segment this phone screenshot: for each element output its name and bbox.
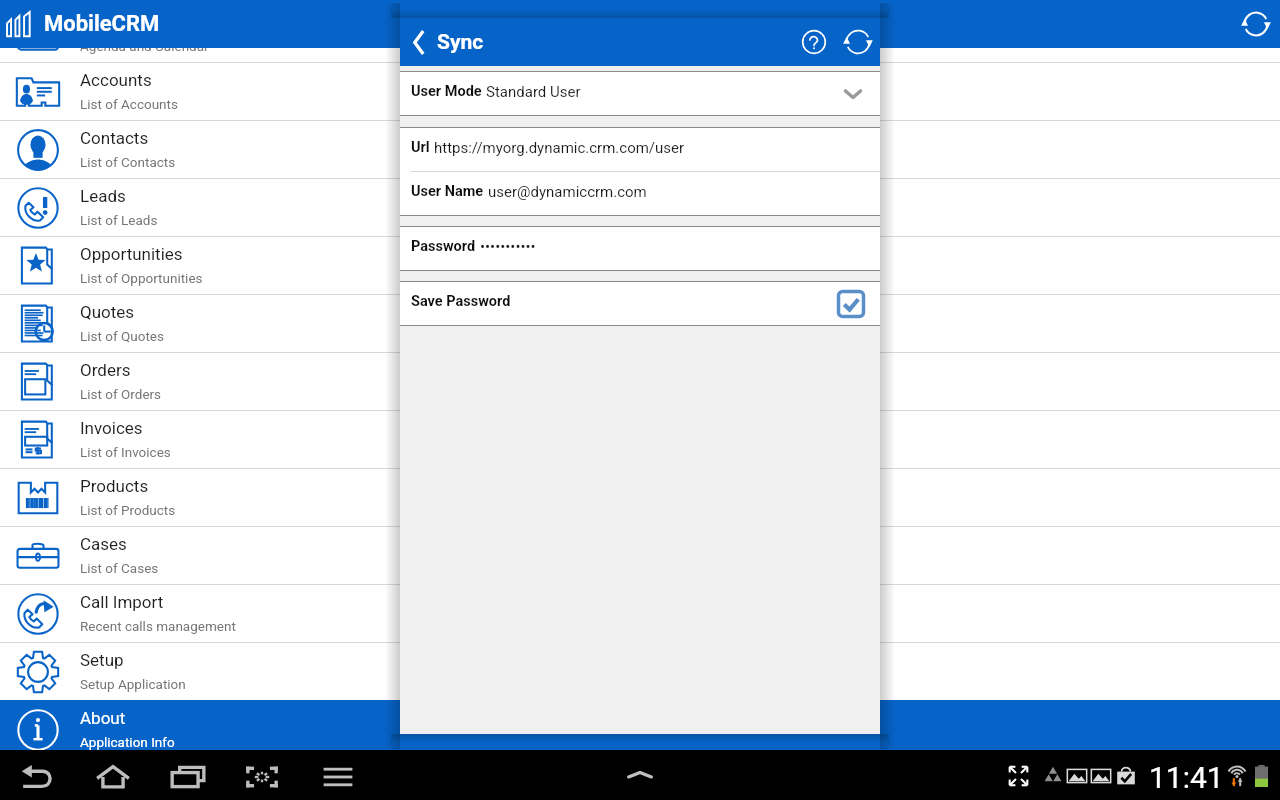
button[interactable]: Invoices [0,410,1280,468]
staticText: Sync [437,30,484,55]
button[interactable]: User Mode [400,72,880,115]
staticText: About [80,708,126,728]
staticText: Cases [80,534,127,554]
staticText: Application Info [80,734,175,750]
staticText: user@dynamiccrm.com [488,183,647,201]
staticText: List of Orders [80,386,162,402]
staticText: Agenda and Calendar [80,48,209,54]
button[interactable]: Help [792,20,836,64]
button[interactable]: Recent apps [162,755,214,799]
button[interactable]: Opportunities [0,236,1280,294]
staticText: MobileCRM [44,11,160,37]
staticText: List of Invoices [80,444,171,460]
staticText: Invoices [80,418,143,438]
staticText: Orders [80,360,131,380]
button[interactable]: Call Import [0,584,1280,642]
staticText: Url [411,139,430,156]
staticText: List of Accounts [80,96,178,112]
staticText: Call Import [80,592,164,612]
button[interactable]: About [0,700,1280,750]
staticText: ••••••••••• [480,238,536,256]
staticText: List of Contacts [80,154,176,170]
staticText: Setup Application [80,676,186,692]
button[interactable]: Quotes [0,294,1280,352]
staticText: Opportunities [80,244,183,264]
staticText: Setup [80,650,124,670]
staticText: User Name [411,183,484,200]
staticText: List of Opportunities [80,270,203,286]
staticText: Password [411,238,476,255]
staticText: Recent calls management [80,618,236,634]
staticText: List of Cases [80,560,159,576]
button[interactable]: Url [400,128,880,171]
button[interactable]: Menu [312,755,364,799]
button[interactable]: User Name [400,172,880,215]
staticText: 11:41 [1149,760,1224,795]
staticText: Quotes [80,302,135,322]
button[interactable]: Leads [0,178,1280,236]
staticText: List of Products [80,502,176,518]
staticText: Standard User [486,83,581,101]
button[interactable]: Agenda [0,48,1280,62]
staticText: Contacts [80,128,149,148]
button[interactable]: Products [0,468,1280,526]
button[interactable]: Back [13,755,65,799]
button[interactable]: Password [400,227,880,270]
button[interactable]: Orders [0,352,1280,410]
button[interactable]: Accounts [0,62,1280,120]
staticText: List of Leads [80,212,158,228]
staticText: User Mode [411,83,482,100]
staticText: Save Password [411,293,511,310]
button[interactable]: Contacts [0,120,1280,178]
staticText: Accounts [80,70,152,90]
button[interactable]: Setup [0,642,1280,700]
button[interactable]: Sync [1232,0,1280,48]
button[interactable]: Back [400,18,437,66]
button[interactable]: Screenshot [236,755,288,799]
button[interactable]: Save Password [400,282,880,325]
button[interactable]: Synchronize [836,20,880,64]
staticText: https://myorg.dynamic.crm.com/user [434,139,685,157]
button[interactable]: Cases [0,526,1280,584]
staticText: Products [80,476,149,496]
button[interactable]: Home [87,755,139,799]
staticText: List of Quotes [80,328,164,344]
staticText: Leads [80,186,126,206]
